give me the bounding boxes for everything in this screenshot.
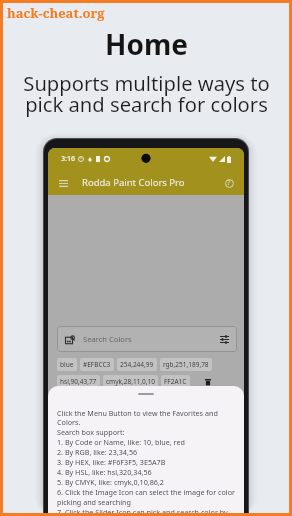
- button[interactable]: Help: [222, 176, 236, 190]
- staticText: cmyk,28,11,0,10: [106, 377, 155, 386]
- staticText: Search Colors: [83, 334, 132, 344]
- staticText: Home: [105, 25, 188, 63]
- button[interactable]: Pick from image: [57, 326, 237, 352]
- staticText: 3:16: [61, 154, 75, 164]
- button[interactable]: cmyk,28,11,0,10: [103, 375, 158, 388]
- button[interactable]: 254,244,99: [117, 358, 157, 371]
- staticText: 254,244,99: [120, 360, 154, 369]
- staticText: FF2A1C: [164, 377, 187, 386]
- staticText: #EFBCC3: [83, 360, 111, 369]
- other: Pick from image: [64, 333, 76, 345]
- button[interactable]: Open navigation menu: [48, 170, 244, 195]
- staticText: Click the Menu Button to view the Favori…: [57, 408, 236, 516]
- button[interactable]: Delete history: [202, 376, 213, 387]
- staticText: ?: [227, 178, 231, 188]
- button[interactable]: blue: [57, 358, 77, 371]
- other: Color sliders: [218, 333, 230, 345]
- button[interactable]: #EFBCC3: [80, 358, 114, 371]
- button[interactable]: hsl,90,43,77: [57, 375, 100, 388]
- staticText: rgb,251,189,78: [163, 360, 209, 369]
- staticText: hsl,90,43,77: [60, 377, 97, 386]
- button[interactable]: rgb,251,189,78: [160, 358, 212, 371]
- staticText: blue: [60, 360, 74, 369]
- staticText: Rodda Paint Colors Pro: [82, 176, 185, 189]
- staticText: Supports multiple ways to pick and searc…: [23, 69, 270, 118]
- staticText: hack-cheat.org: [7, 4, 105, 22]
- button[interactable]: FF2A1C: [161, 375, 190, 388]
- button[interactable]: Open navigation menu: [56, 176, 70, 190]
